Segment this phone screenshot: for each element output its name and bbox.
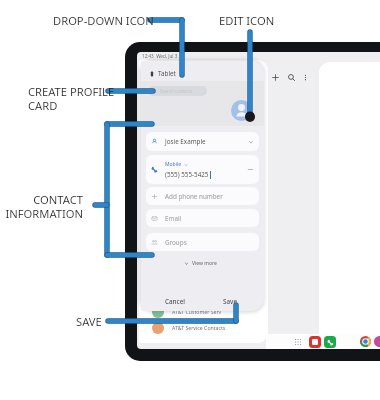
staticText: SAVE [76, 314, 102, 329]
button[interactable]: AT&T Service Contacts [152, 321, 264, 334]
staticText: Josie Example [165, 137, 206, 146]
button[interactable]: More options [301, 73, 310, 82]
button[interactable]: View more [183, 259, 218, 268]
button[interactable]: Search contacts [148, 86, 207, 96]
staticText: Email [165, 214, 182, 223]
button[interactable]: Tablet [149, 68, 184, 79]
staticText: DROP-DOWN ICON [53, 13, 154, 28]
button[interactable]: App [374, 336, 380, 347]
staticText: View more [192, 260, 217, 267]
staticText: Mobile [165, 161, 182, 168]
button[interactable]: All apps [294, 338, 302, 346]
staticText: Tablet [158, 69, 176, 78]
button[interactable]: Edit photo [245, 112, 255, 122]
staticText: Add phone number [165, 192, 223, 201]
button[interactable]: Office app [309, 336, 321, 348]
button[interactable]: Contact photo [231, 100, 252, 121]
button[interactable]: Add phone number [146, 187, 259, 205]
button[interactable]: Add contact [271, 73, 280, 82]
button[interactable]: Phone app [324, 336, 336, 348]
button[interactable]: Josie Example [146, 132, 259, 151]
staticText: Search contacts [160, 88, 193, 94]
button[interactable]: Cancel [163, 295, 187, 308]
staticText: AT&T Customer Serv [172, 308, 222, 315]
staticText: AT&T Service Contacts [172, 324, 226, 331]
staticText: Groups [165, 238, 187, 247]
button[interactable]: Chrome [360, 336, 371, 347]
staticText: Save [223, 297, 237, 306]
staticText: (555) 555-5425 [165, 170, 209, 179]
button[interactable]: Search [287, 73, 296, 82]
staticText: 12:43 Wed, Jul 3 [142, 53, 178, 59]
button[interactable]: AT&T Customer Serv [152, 305, 264, 318]
staticText: CREATE PROFILE CARD [28, 84, 115, 113]
staticText: CONTACT INFORMATION [5, 192, 83, 221]
button[interactable]: Email [146, 209, 259, 227]
button[interactable]: Save [221, 295, 239, 308]
button[interactable]: Groups [146, 233, 259, 251]
staticText: Cancel [165, 297, 185, 306]
button[interactable]: Mobile [146, 155, 259, 184]
staticText: EDIT ICON [219, 13, 275, 28]
